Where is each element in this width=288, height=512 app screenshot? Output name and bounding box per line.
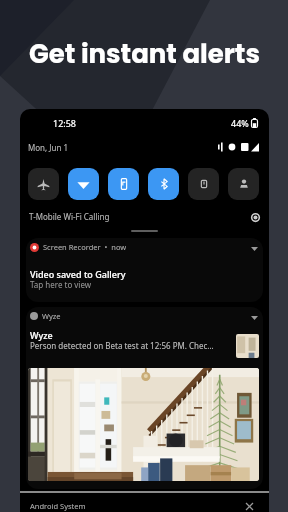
staticText: Android System — [30, 501, 86, 511]
button[interactable]: Quick setting — [228, 168, 259, 200]
staticText: Screen Recorder • now — [43, 242, 127, 252]
button[interactable]: Quick setting — [28, 168, 59, 200]
button[interactable]: Quick setting — [68, 168, 99, 200]
staticText: T-Mobile Wi-Fi Calling — [29, 211, 110, 222]
staticText: Video saved to Gallery — [30, 268, 126, 280]
staticText: Get instant alerts — [29, 36, 260, 72]
button[interactable]: Quick setting — [188, 168, 219, 200]
staticText: Tap here to view — [30, 279, 92, 290]
staticText: Person detected on Beta test at 12:56 PM… — [30, 340, 220, 351]
button[interactable]: Quick setting — [148, 168, 179, 200]
staticText: Wyze — [30, 329, 53, 341]
staticText: Mon, Jun 1 — [28, 142, 68, 153]
button[interactable]: Screen Recorder • now — [26, 238, 263, 302]
button[interactable]: Wyze — [26, 307, 263, 489]
staticText: Wyze — [42, 311, 61, 321]
button[interactable]: Quick setting — [108, 168, 139, 200]
staticText: 44% — [231, 117, 249, 129]
staticText: 12:58 — [53, 117, 77, 129]
